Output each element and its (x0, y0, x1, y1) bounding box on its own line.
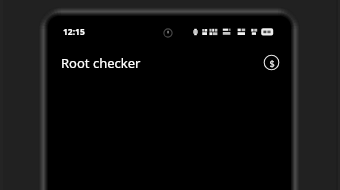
button[interactable]: Coins (263, 54, 280, 71)
button[interactable]: Root checker (61, 54, 141, 72)
staticText: 12:15 (63, 26, 85, 38)
other: Alarm (163, 28, 173, 38)
staticText: $ (269, 57, 275, 69)
